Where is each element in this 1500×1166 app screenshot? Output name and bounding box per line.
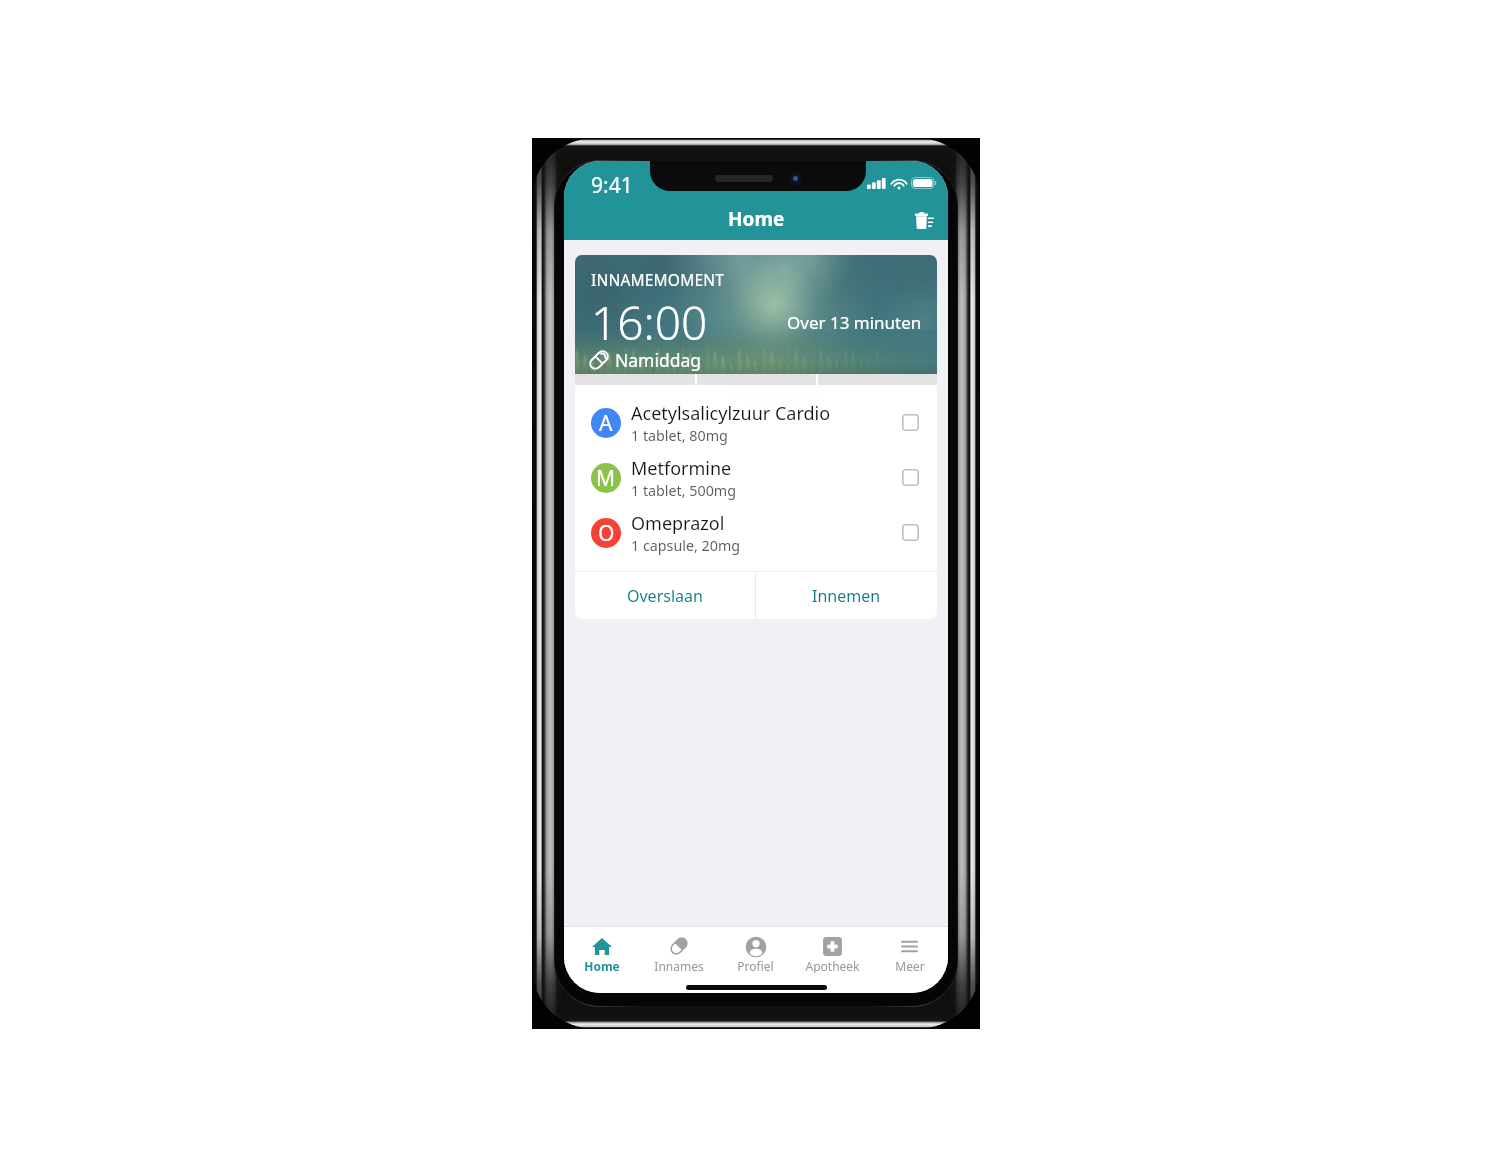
- button[interactable]: Delete intake list: [906, 204, 942, 240]
- button[interactable]: Mark Acetylsalicylzuur Cardio as taken: [902, 414, 919, 431]
- staticText: Overslaan: [627, 585, 703, 607]
- staticText: Innames: [654, 958, 704, 973]
- staticText: Acetylsalicylzuur Cardio: [631, 401, 831, 426]
- button[interactable]: Overslaan: [575, 572, 755, 619]
- staticText: 9:41: [591, 171, 633, 200]
- button[interactable]: INNAMEMOMENT: [575, 255, 937, 374]
- staticText: Omeprazol: [631, 511, 725, 536]
- button[interactable]: Meer: [871, 927, 948, 973]
- button[interactable]: A: [575, 395, 937, 450]
- staticText: Apotheek: [805, 958, 860, 973]
- staticText: 1 tablet, 80mg: [631, 426, 728, 445]
- staticText: 1 tablet, 500mg: [631, 481, 737, 500]
- staticText: INNAMEMOMENT: [591, 269, 725, 290]
- button[interactable]: Mark Metformine as taken: [902, 469, 919, 486]
- button[interactable]: Home: [564, 927, 640, 973]
- staticText: Over 13 minuten: [787, 311, 922, 334]
- staticText: Home: [728, 206, 785, 232]
- staticText: 16:00: [591, 291, 708, 354]
- staticText: Meer: [895, 958, 925, 973]
- staticText: M: [596, 464, 616, 493]
- staticText: 1 capsule, 20mg: [631, 536, 741, 555]
- button[interactable]: M: [575, 450, 937, 505]
- staticText: Namiddag: [615, 348, 702, 372]
- button[interactable]: Profiel: [717, 927, 794, 973]
- staticText: Profiel: [737, 958, 774, 973]
- staticText: Metformine: [631, 456, 732, 481]
- staticText: O: [598, 519, 615, 548]
- button[interactable]: Mark Omeprazol as taken: [902, 524, 919, 541]
- staticText: A: [599, 409, 613, 438]
- staticText: Home: [584, 958, 620, 973]
- staticText: Innemen: [812, 585, 881, 607]
- button[interactable]: O: [575, 505, 937, 560]
- button[interactable]: Apotheek: [794, 927, 871, 973]
- button[interactable]: Innemen: [756, 572, 937, 619]
- button[interactable]: Innames: [640, 927, 717, 973]
